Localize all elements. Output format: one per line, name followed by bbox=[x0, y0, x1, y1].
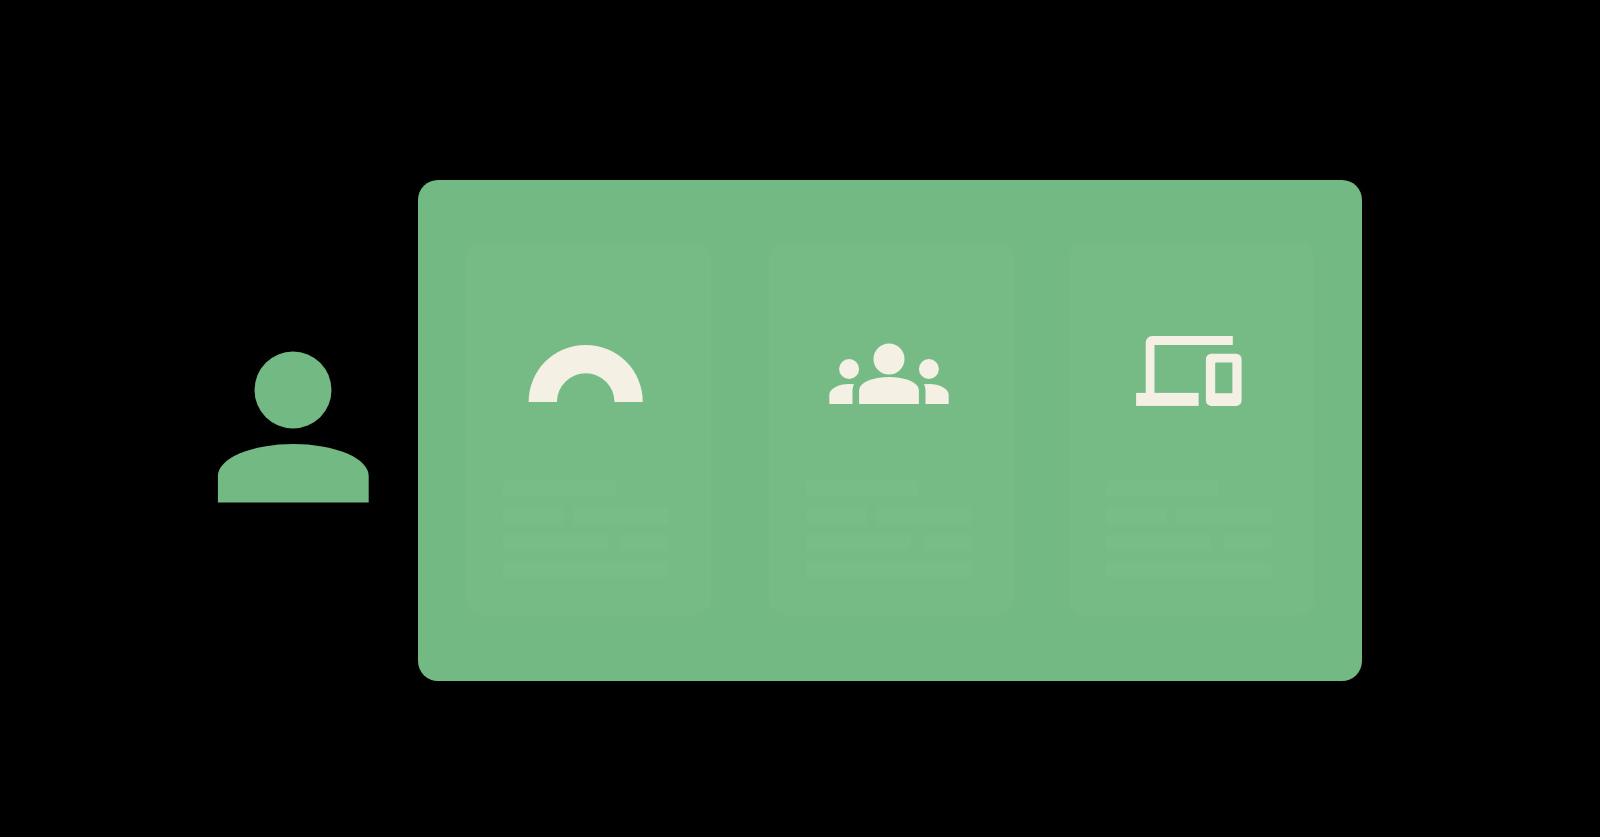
button[interactable]: Household bbox=[769, 243, 1014, 615]
button[interactable]: Account bbox=[217, 351, 369, 503]
button[interactable]: Routines bbox=[466, 243, 711, 615]
button[interactable]: Devices bbox=[1069, 243, 1314, 615]
